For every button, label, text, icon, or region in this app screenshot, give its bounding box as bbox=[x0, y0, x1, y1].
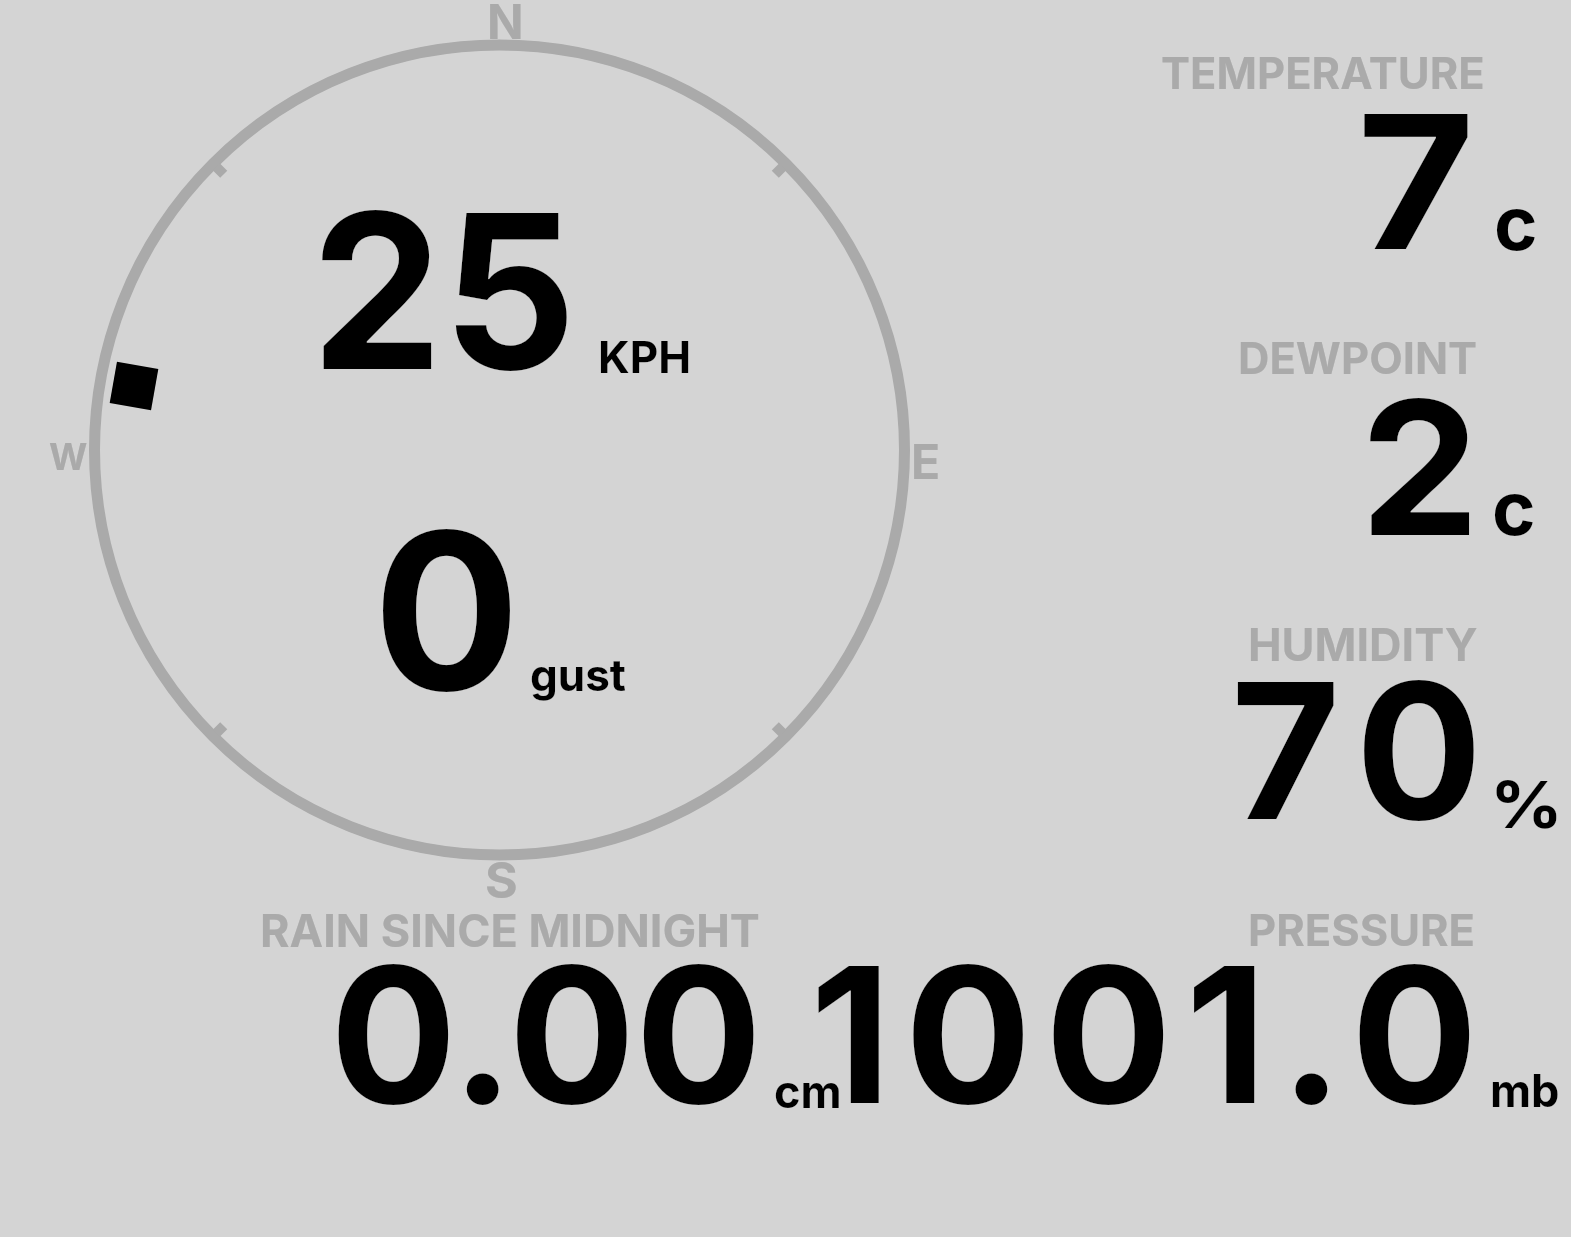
staticText: W bbox=[49, 434, 88, 479]
staticText: 7 bbox=[1357, 69, 1476, 294]
button[interactable]: Wind speed and direction bbox=[40, 0, 970, 900]
staticText: 2 bbox=[1360, 355, 1480, 580]
staticText: DEWPOINT bbox=[1238, 332, 1478, 385]
button[interactable]: Dew point 2 degrees Celsius bbox=[1140, 315, 1571, 555]
staticText: HUMIDITY bbox=[1248, 617, 1478, 671]
staticText: S bbox=[485, 850, 518, 910]
staticText: cm bbox=[774, 1064, 842, 1118]
staticText: c bbox=[1494, 178, 1538, 268]
other: Wind direction marker bbox=[110, 362, 158, 410]
staticText: 25 bbox=[311, 161, 576, 421]
button[interactable]: Temperature 7 degrees Celsius bbox=[1140, 30, 1571, 270]
button[interactable]: Pressure 1001.0 millibar bbox=[855, 895, 1565, 1125]
staticText: PRESSURE bbox=[1248, 904, 1475, 957]
staticText: E bbox=[911, 432, 941, 490]
staticText: % bbox=[1490, 766, 1563, 843]
staticText: 0.00 bbox=[330, 921, 763, 1148]
staticText: 1001.0 bbox=[810, 921, 1492, 1148]
button[interactable]: Humidity 70 percent bbox=[1140, 600, 1571, 840]
staticText: 0 bbox=[373, 479, 521, 743]
staticText: gust bbox=[530, 648, 626, 701]
staticText: KPH bbox=[598, 330, 692, 383]
staticText: mb bbox=[1490, 1063, 1560, 1117]
staticText: RAIN SINCE MIDNIGHT bbox=[260, 903, 760, 957]
button[interactable]: Rain since midnight 0.00 cm bbox=[250, 895, 850, 1125]
staticText: c bbox=[1492, 463, 1536, 553]
staticText: 70 bbox=[1231, 637, 1501, 864]
staticText: N bbox=[487, 0, 524, 50]
staticText: TEMPERATURE bbox=[1161, 47, 1485, 100]
